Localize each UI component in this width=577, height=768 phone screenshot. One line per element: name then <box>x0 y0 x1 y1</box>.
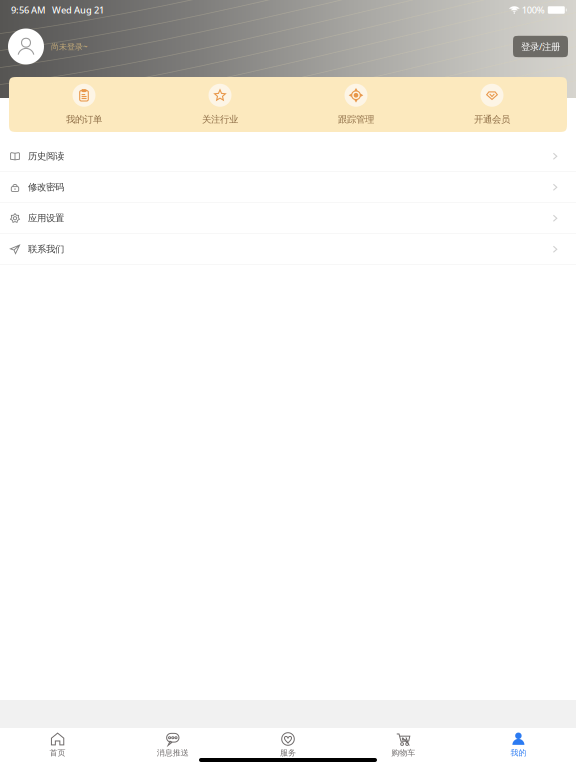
staticText: 100% <box>522 4 545 16</box>
staticText: 购物车 <box>391 748 415 758</box>
staticText: 我的订单 <box>66 114 102 125</box>
staticText: 9:56 AM <box>11 4 46 16</box>
button[interactable]: 购物车 <box>346 732 461 758</box>
staticText: 历史阅读 <box>28 150 64 162</box>
button[interactable]: 历史阅读 <box>0 141 576 172</box>
staticText: 消息推送 <box>157 748 189 758</box>
button[interactable]: 服务 <box>230 732 346 758</box>
button[interactable]: 关注行业 <box>152 84 288 125</box>
button[interactable]: 联系我们 <box>0 234 576 265</box>
staticText: 应用设置 <box>28 212 64 224</box>
button[interactable]: 开通会员 <box>424 84 560 125</box>
staticText: Wed Aug 21 <box>52 4 104 16</box>
staticText: 首页 <box>50 748 66 758</box>
button[interactable]: 我的 <box>461 732 576 758</box>
staticText: 关注行业 <box>202 114 238 125</box>
staticText: 修改密码 <box>28 181 64 193</box>
staticText: 开通会员 <box>474 114 510 125</box>
staticText: 联系我们 <box>28 243 64 255</box>
button[interactable]: 消息推送 <box>115 732 230 758</box>
button[interactable]: 首页 <box>0 732 115 758</box>
button[interactable]: 我的订单 <box>16 84 152 125</box>
staticText: 尚未登录~ <box>51 41 88 52</box>
staticText: 登录/注册 <box>521 40 560 53</box>
staticText: 我的 <box>510 748 526 758</box>
button[interactable]: 登录/注册 <box>513 36 568 57</box>
staticText: 服务 <box>280 748 296 758</box>
staticText: 跟踪管理 <box>338 114 374 125</box>
button[interactable]: 修改密码 <box>0 172 576 203</box>
button[interactable]: 跟踪管理 <box>288 84 424 125</box>
button[interactable]: 应用设置 <box>0 203 576 234</box>
